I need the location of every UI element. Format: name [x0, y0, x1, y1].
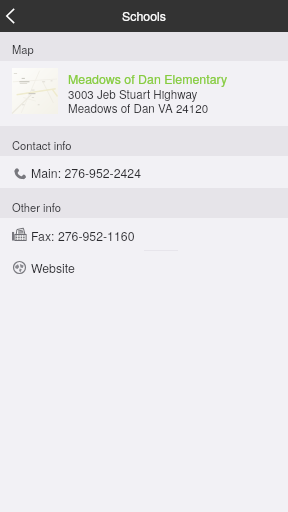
button[interactable]: Back [0, 0, 30, 32]
staticText: Contact info [12, 137, 72, 153]
button[interactable]: Main: 276-952-2424 [0, 157, 288, 189]
staticText: Schools [0, 7, 288, 25]
button[interactable]: Meadows of Dan Elementary [0, 61, 288, 126]
button[interactable]: Fax: 276-952-1160 [0, 220, 288, 252]
staticText: Meadows of Dan Elementary [68, 70, 228, 88]
staticText: Website [31, 259, 75, 277]
staticText: Meadows of Dan VA 24120 [68, 100, 209, 117]
staticText: Fax: 276-952-1160 [31, 227, 135, 245]
button[interactable]: Website [0, 252, 288, 284]
staticText: Map [12, 41, 34, 57]
staticText: Main: 276-952-2424 [31, 164, 142, 182]
staticText: 3003 Jeb Stuart Highway [68, 86, 198, 103]
staticText: Other info [12, 199, 61, 215]
